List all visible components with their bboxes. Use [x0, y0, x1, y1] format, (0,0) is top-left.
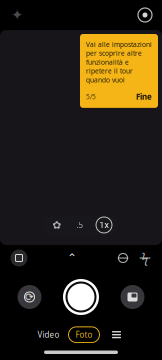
staticText: 1x — [99, 220, 108, 230]
button[interactable]: Video — [37, 329, 59, 340]
staticText: ⟳ — [25, 291, 34, 303]
button[interactable]: Foto — [68, 327, 99, 342]
staticText: 5/5 — [86, 92, 96, 101]
staticText: ✿ — [52, 219, 61, 231]
staticText: ✦ — [11, 7, 23, 23]
button[interactable]: .5 — [73, 218, 87, 232]
staticText: Foto — [75, 329, 92, 340]
button[interactable]: 1x — [96, 217, 112, 233]
button[interactable]: Timer disattivato — [112, 245, 134, 271]
staticText: ϟ — [141, 250, 148, 266]
button[interactable]: Impostazioni — [132, 2, 158, 28]
button[interactable]: Altre opzioni — [59, 245, 85, 271]
button[interactable]: Flash disattivato — [134, 245, 156, 271]
button[interactable]: Altre modalità — [108, 328, 124, 342]
staticText: Vai alle impostazioni per scoprire altre… — [86, 40, 152, 84]
button[interactable]: Fine — [136, 91, 152, 102]
staticText: Fine — [136, 91, 152, 102]
button[interactable]: Effetti — [4, 2, 30, 28]
button[interactable]: Formato immagine — [6, 245, 32, 271]
button[interactable]: Galleria — [112, 277, 152, 317]
staticText: Video — [37, 329, 59, 340]
button[interactable]: Scatta foto — [59, 275, 103, 319]
button[interactable]: Macro — [50, 218, 64, 232]
staticText: ⌃ — [67, 251, 77, 265]
staticText: .5 — [76, 220, 83, 230]
button[interactable]: Cambia fotocamera — [9, 277, 49, 317]
